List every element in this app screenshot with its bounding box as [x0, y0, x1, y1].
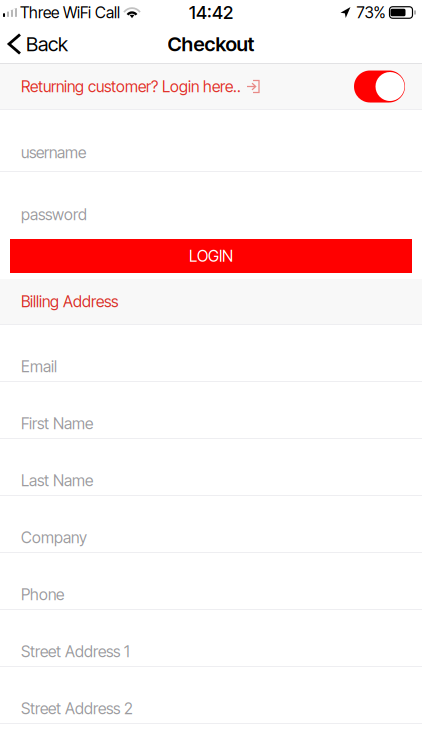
staticText: Returning customer? Login here..: [21, 77, 241, 96]
staticText: Back: [26, 32, 68, 56]
staticText: Phone: [21, 585, 64, 604]
button[interactable]: Back: [0, 27, 74, 61]
staticText: Last Name: [21, 471, 93, 490]
staticText: LOGIN: [189, 246, 233, 265]
staticText: Email: [21, 357, 57, 376]
staticText: 73%: [356, 3, 385, 22]
staticText: Company: [21, 528, 87, 547]
staticText: password: [21, 205, 87, 224]
staticText: First Name: [21, 414, 93, 433]
button[interactable]: Returning customer? Login here..: [0, 64, 422, 109]
staticText: Street Address 2: [21, 699, 133, 718]
button[interactable]: LOGIN: [10, 239, 412, 273]
staticText: Three WiFi Call: [20, 3, 120, 22]
staticText: Street Address 1: [21, 642, 130, 661]
staticText: username: [21, 143, 86, 162]
staticText: Billing Address: [21, 292, 118, 311]
staticText: Checkout: [167, 32, 254, 56]
staticText: 14:42: [189, 2, 233, 23]
